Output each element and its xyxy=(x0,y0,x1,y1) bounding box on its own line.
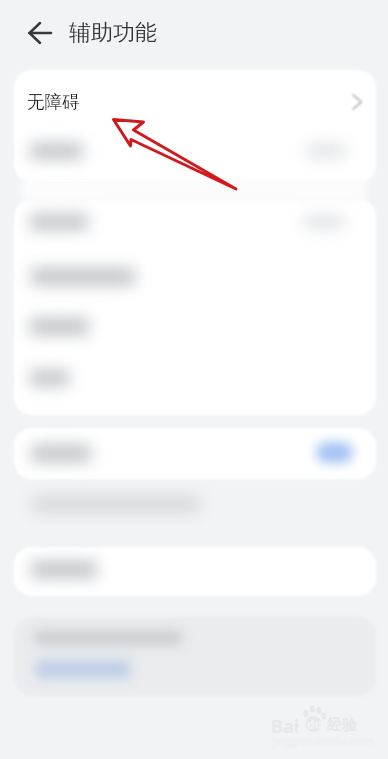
staticText: 经验 xyxy=(327,716,357,735)
staticText: du xyxy=(307,716,323,732)
staticText: 辅助功能 xyxy=(69,19,157,47)
button[interactable]: 无障碍 xyxy=(14,72,376,132)
staticText: Bai xyxy=(271,714,300,739)
staticText: 无障碍 xyxy=(27,91,80,113)
button[interactable]: Back xyxy=(23,16,57,50)
